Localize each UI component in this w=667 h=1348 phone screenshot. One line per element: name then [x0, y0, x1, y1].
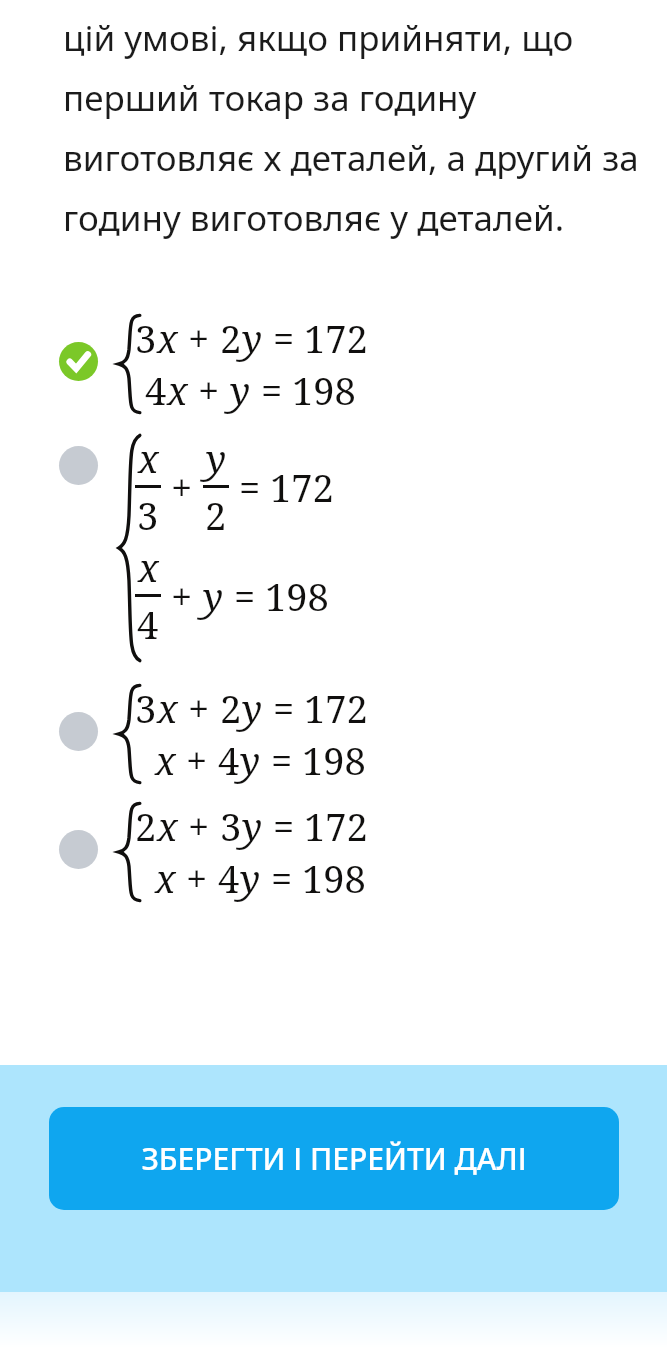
staticText: y	[242, 800, 263, 852]
staticText: 3	[220, 800, 242, 852]
staticText: +	[178, 682, 220, 734]
button[interactable]: Select answer	[0, 800, 667, 904]
staticText: = 172	[263, 312, 368, 364]
staticText: +	[178, 800, 220, 852]
button[interactable]: ЗБЕРЕГТИ І ПЕРЕЙТИ ДАЛІ	[49, 1107, 619, 1210]
staticText: 3	[137, 489, 159, 541]
other: Select answer	[59, 712, 98, 751]
staticText: +	[161, 570, 203, 622]
staticText: x	[138, 541, 159, 593]
staticText: = 198	[224, 570, 329, 622]
staticText: Яка система рівнянь відповідає цій умові…	[63, 0, 653, 241]
staticText: y	[240, 734, 261, 786]
button[interactable]: Select answer	[0, 682, 667, 786]
staticText: y	[206, 432, 227, 484]
button[interactable]: Selected answer	[0, 312, 667, 416]
other: Selected answer	[59, 342, 98, 381]
staticText: 4	[218, 852, 240, 904]
staticText: x	[138, 432, 159, 484]
staticText: = 172	[263, 682, 368, 734]
other: Select answer	[59, 446, 98, 485]
staticText: = 198	[261, 734, 366, 786]
staticText: x	[167, 364, 188, 416]
staticText: = 198	[261, 852, 366, 904]
other: Select answer	[59, 830, 98, 869]
staticText: y	[203, 570, 224, 622]
staticText: x	[157, 682, 178, 734]
staticText: = 198	[251, 364, 356, 416]
staticText: 4	[135, 364, 167, 416]
staticText: x	[157, 312, 178, 364]
staticText: = 172	[229, 461, 334, 513]
staticText	[135, 852, 155, 904]
staticText: 3	[135, 682, 157, 734]
staticText: +	[188, 364, 230, 416]
button[interactable]: Select answer	[0, 432, 667, 664]
staticText: +	[176, 734, 218, 786]
staticText: 4	[218, 734, 240, 786]
staticText: y	[242, 682, 263, 734]
staticText: 4	[137, 598, 159, 650]
staticText: y	[242, 312, 263, 364]
staticText: 2	[135, 800, 157, 852]
staticText: ЗБЕРЕГТИ І ПЕРЕЙТИ ДАЛІ	[141, 1138, 527, 1179]
staticText: 2	[220, 682, 242, 734]
staticText: 2	[220, 312, 242, 364]
staticText: x	[155, 852, 176, 904]
staticText: 3	[135, 312, 157, 364]
staticText: +	[176, 852, 218, 904]
staticText: 2	[205, 489, 227, 541]
staticText: y	[240, 852, 261, 904]
staticText: +	[178, 312, 220, 364]
staticText: x	[157, 800, 178, 852]
staticText: y	[230, 364, 251, 416]
staticText: x	[155, 734, 176, 786]
staticText: = 172	[263, 800, 368, 852]
staticText	[135, 734, 155, 786]
staticText: +	[161, 461, 203, 513]
